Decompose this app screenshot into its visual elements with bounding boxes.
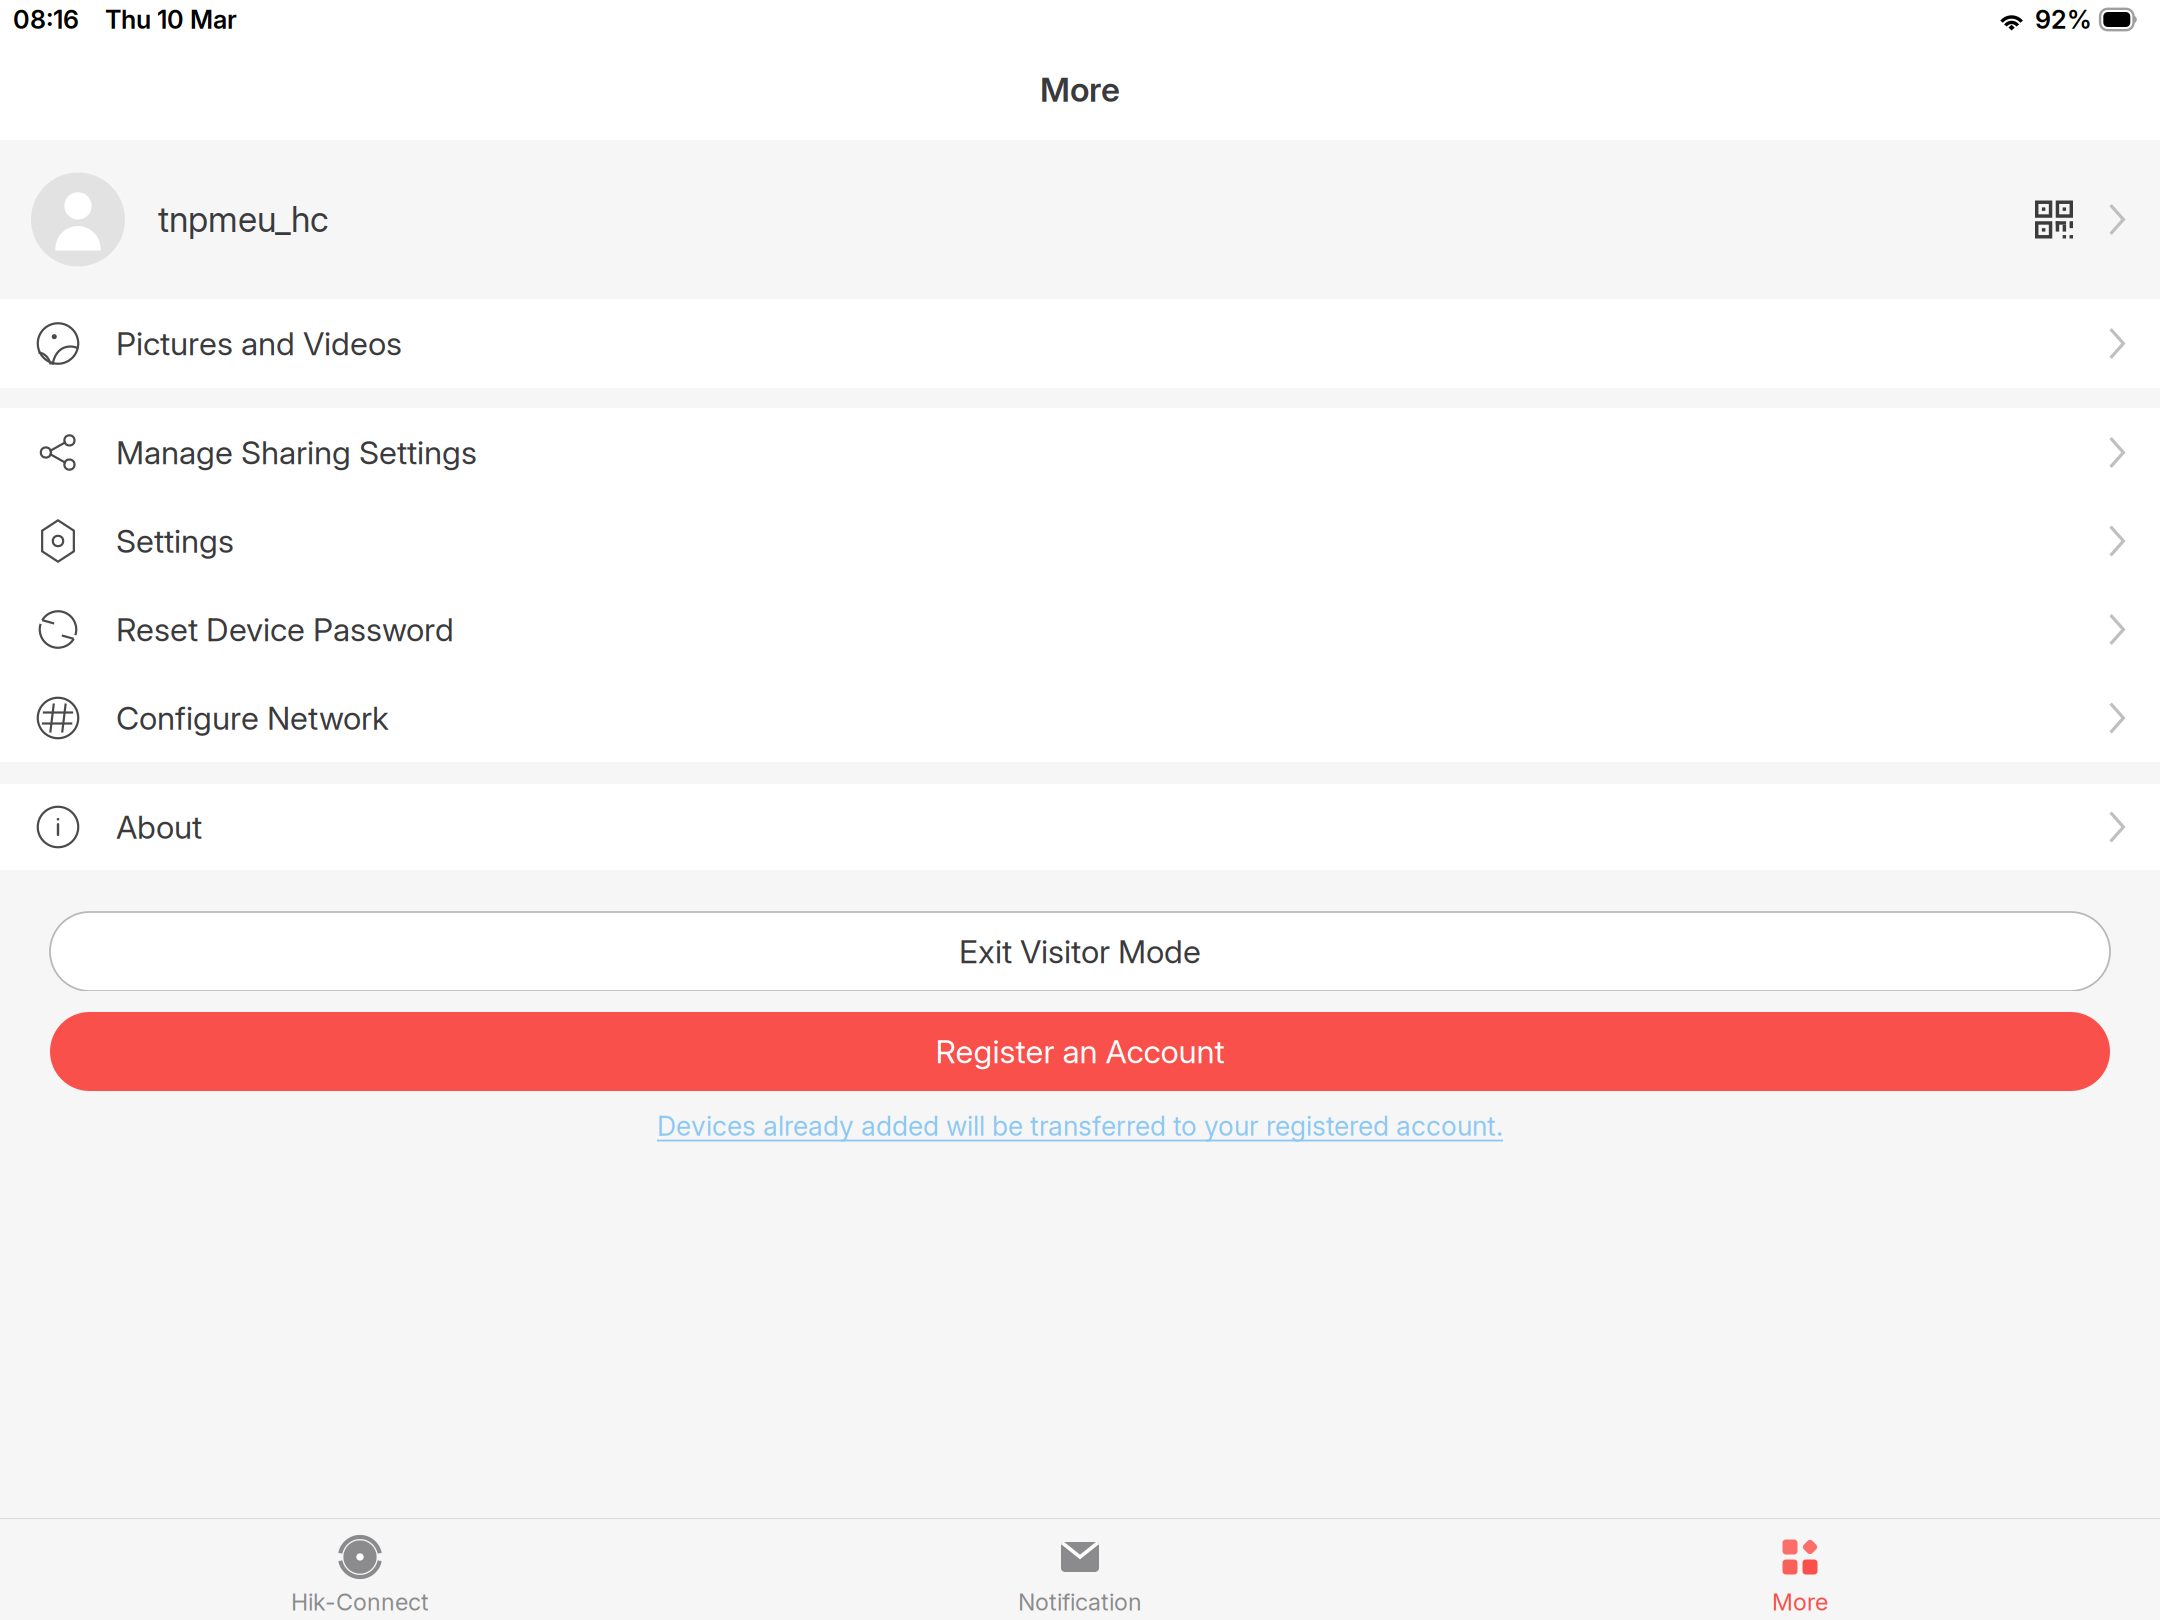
staticText: 92% bbox=[2035, 4, 2092, 35]
button[interactable]: Register an Account bbox=[50, 1012, 2110, 1091]
button[interactable]: Manage Sharing Settings bbox=[0, 408, 2160, 497]
button[interactable]: Exit Visitor Mode bbox=[50, 912, 2110, 991]
button[interactable]: Configure Network bbox=[0, 674, 2160, 762]
button[interactable]: Notification bbox=[720, 1519, 1440, 1620]
staticText: 08:16 bbox=[13, 4, 79, 35]
staticText: Pictures and Videos bbox=[116, 324, 402, 363]
staticText: More bbox=[1772, 1588, 1828, 1616]
staticText: Devices already added will be transferre… bbox=[657, 1110, 1503, 1142]
button[interactable]: tnpmeu_hc bbox=[0, 140, 2160, 299]
staticText: Manage Sharing Settings bbox=[116, 433, 477, 472]
button[interactable]: More bbox=[1440, 1519, 2160, 1620]
staticText: Register an Account bbox=[935, 1032, 1224, 1071]
button[interactable]: Pictures and Videos bbox=[0, 299, 2160, 388]
staticText: Configure Network bbox=[116, 699, 389, 737]
staticText: About bbox=[116, 808, 202, 846]
staticText: More bbox=[1040, 69, 1120, 110]
staticText: Hik-Connect bbox=[291, 1588, 429, 1616]
button[interactable]: About bbox=[0, 784, 2160, 870]
staticText: Notification bbox=[1018, 1588, 1142, 1616]
staticText: Exit Visitor Mode bbox=[959, 932, 1201, 971]
staticText: tnpmeu_hc bbox=[158, 198, 329, 240]
button[interactable]: Devices already added will be transferre… bbox=[50, 1109, 2110, 1143]
button[interactable]: Reset Device Password bbox=[0, 585, 2160, 674]
staticText: Settings bbox=[116, 522, 234, 560]
button[interactable]: Settings bbox=[0, 497, 2160, 585]
staticText: Thu 10 Mar bbox=[105, 4, 237, 35]
button[interactable]: Hik-Connect bbox=[0, 1519, 720, 1620]
staticText: Reset Device Password bbox=[116, 610, 454, 649]
